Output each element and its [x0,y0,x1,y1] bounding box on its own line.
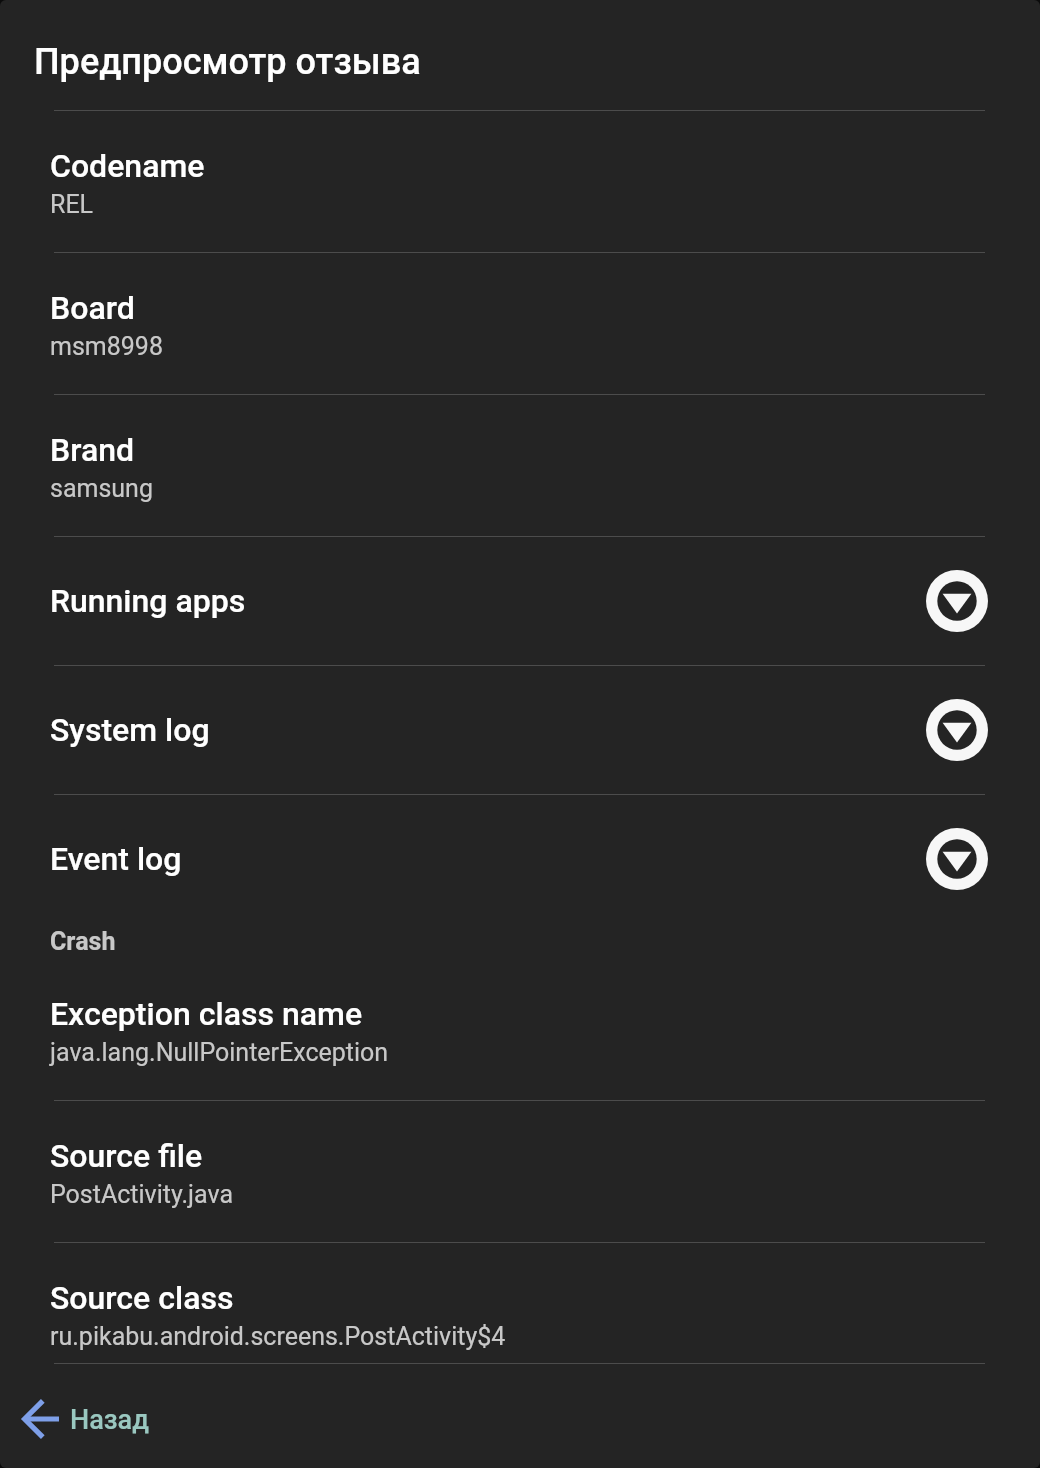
staticText: java.lang.NullPointerException [50,1038,389,1067]
staticText: Предпросмотр отзыва [34,41,421,83]
staticText: Event log [50,840,926,878]
button[interactable]: System log [0,666,1040,794]
button[interactable]: Expand [926,699,988,761]
button[interactable]: Expand [926,828,988,890]
button[interactable]: Exception class name [0,959,1040,1100]
staticText: Running apps [50,582,926,620]
staticText: PostActivity.java [50,1180,234,1209]
staticText: Crash [50,927,116,956]
staticText: Source file [50,1137,203,1175]
button[interactable]: Back [0,1364,1040,1468]
staticText: Назад [70,1404,149,1436]
button[interactable]: Board [0,253,1040,394]
button[interactable]: Codename [0,111,1040,252]
button[interactable]: Brand [0,395,1040,536]
staticText: System log [50,711,926,749]
staticText: msm8998 [50,332,163,361]
staticText: ru.pikabu.android.screens.PostActivity$4 [50,1322,506,1351]
staticText: REL [50,190,94,219]
staticText: Codename [50,147,205,185]
button[interactable]: Running apps [0,537,1040,665]
button[interactable]: Event log [0,795,1040,923]
staticText: Source class [50,1279,234,1317]
staticText: Exception class name [50,995,363,1033]
other: Back [22,1400,60,1438]
staticText: samsung [50,474,153,503]
staticText: Brand [50,431,135,469]
staticText: Board [50,289,135,327]
button[interactable]: Expand [926,570,988,632]
button[interactable]: Source file [0,1101,1040,1242]
button[interactable]: Source class [0,1243,1040,1363]
